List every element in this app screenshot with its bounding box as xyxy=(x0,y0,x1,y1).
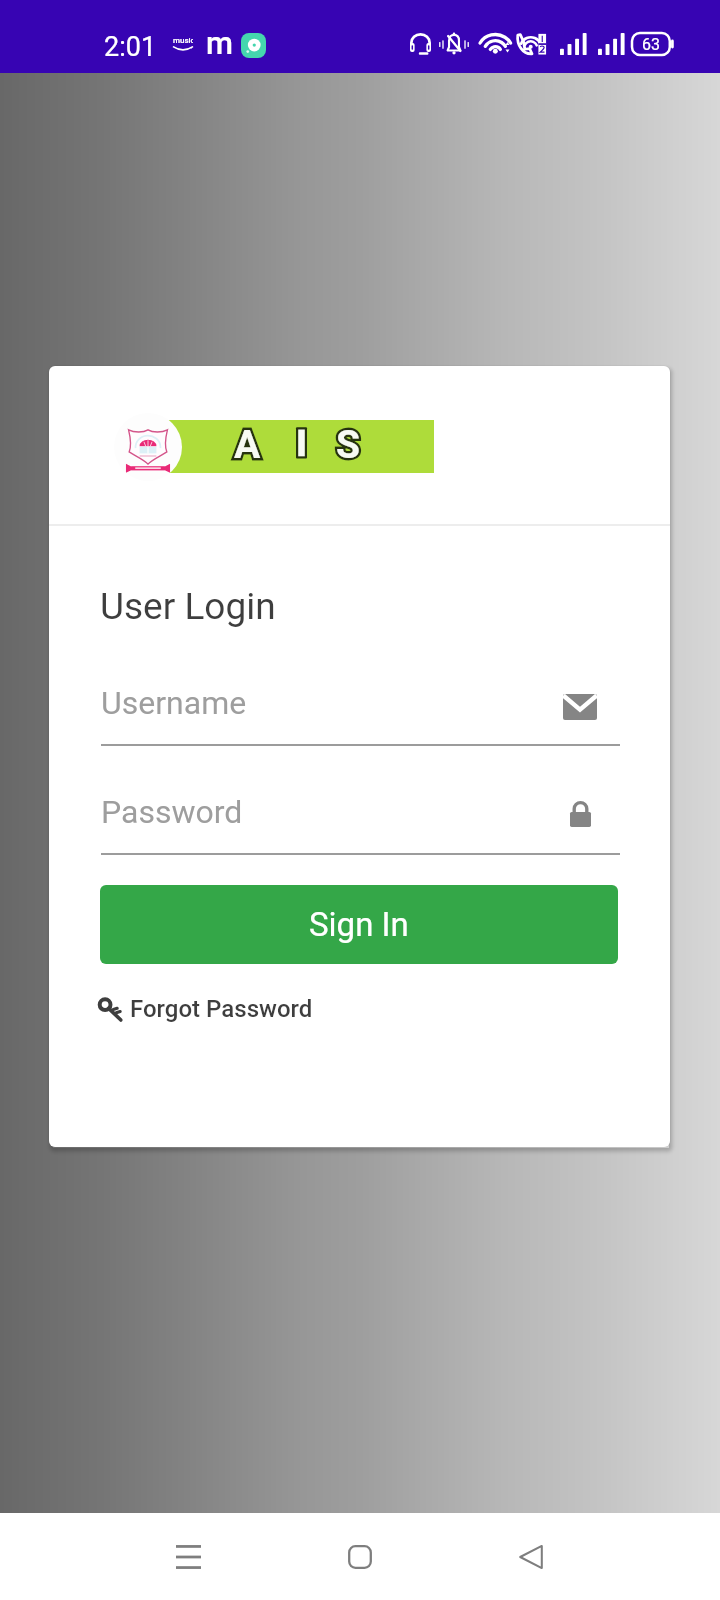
staticText: 2:01 xyxy=(104,31,157,63)
staticText: A xyxy=(234,422,261,468)
button[interactable]: Sign In xyxy=(100,885,618,964)
button[interactable]: Back xyxy=(487,1513,575,1600)
staticText: User Login xyxy=(100,585,276,628)
staticText: Password xyxy=(101,793,243,831)
staticText: A xyxy=(234,422,261,468)
staticText: Sign In xyxy=(309,905,409,944)
staticText: Forgot Password xyxy=(130,995,313,1023)
staticText: music xyxy=(173,36,193,45)
staticText: S xyxy=(336,422,360,468)
staticText: S xyxy=(336,422,360,468)
button[interactable]: Forgot Password xyxy=(95,984,317,1034)
button[interactable]: Password xyxy=(101,786,620,856)
button[interactable]: Home xyxy=(316,1513,404,1600)
staticText: Username xyxy=(101,684,247,722)
staticText: m xyxy=(206,25,233,61)
staticText: 63 xyxy=(642,35,660,54)
button[interactable]: Recent apps xyxy=(144,1513,232,1600)
button[interactable]: Username xyxy=(101,677,620,747)
